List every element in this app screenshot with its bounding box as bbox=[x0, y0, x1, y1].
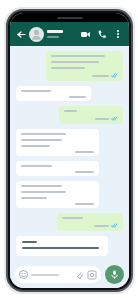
button[interactable]: Camera bbox=[87, 270, 97, 280]
button[interactable] bbox=[16, 181, 99, 208]
button[interactable]: Video call bbox=[78, 27, 92, 41]
button[interactable]: Contact avatar bbox=[29, 27, 44, 42]
button[interactable]: More options bbox=[112, 28, 124, 40]
button[interactable] bbox=[47, 30, 78, 38]
button[interactable]: Record voice message bbox=[105, 265, 124, 284]
button[interactable] bbox=[16, 236, 108, 256]
button[interactable] bbox=[46, 51, 123, 81]
button[interactable] bbox=[59, 106, 123, 124]
button[interactable]: Emoji bbox=[15, 266, 101, 283]
button[interactable]: Attach bbox=[74, 270, 84, 280]
button[interactable] bbox=[57, 213, 123, 231]
button[interactable]: Voice call bbox=[95, 27, 109, 41]
button[interactable]: Back bbox=[15, 28, 27, 40]
button[interactable]: Emoji bbox=[19, 270, 28, 279]
button[interactable] bbox=[16, 129, 99, 156]
button[interactable] bbox=[16, 86, 91, 101]
button[interactable] bbox=[16, 161, 99, 176]
